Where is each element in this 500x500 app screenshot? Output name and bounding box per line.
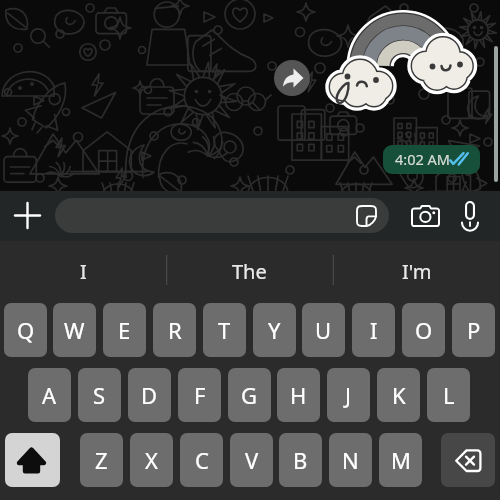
staticText: M: [391, 445, 411, 475]
button[interactable]: G: [228, 368, 271, 422]
staticText: D: [141, 380, 158, 410]
staticText: E: [118, 315, 131, 345]
staticText: U: [315, 315, 332, 345]
button[interactable]: T: [203, 303, 246, 357]
button[interactable]: V: [230, 433, 273, 487]
button[interactable]: M: [379, 433, 422, 487]
button[interactable]: E: [103, 303, 146, 357]
button[interactable]: X: [130, 433, 173, 487]
button[interactable]: Z: [80, 433, 123, 487]
button[interactable]: The: [166, 241, 333, 293]
staticText: The: [232, 258, 267, 285]
button[interactable]: H: [277, 368, 320, 422]
button[interactable]: Sticker: [55, 198, 389, 233]
button[interactable]: U: [302, 303, 345, 357]
staticText: I: [80, 258, 87, 285]
button[interactable]: Voice message: [450, 199, 492, 233]
other: Sticker: [356, 205, 376, 226]
button[interactable]: O: [402, 303, 445, 357]
staticText: H: [290, 380, 307, 410]
button[interactable]: B: [279, 433, 322, 487]
staticText: C: [195, 445, 209, 475]
button[interactable]: L: [427, 368, 470, 422]
button[interactable]: Forward: [274, 60, 310, 96]
staticText: I: [370, 315, 378, 345]
button[interactable]: Q: [4, 303, 47, 357]
staticText: 4:02 AM: [395, 149, 450, 169]
staticText: V: [245, 445, 259, 475]
staticText: P: [467, 315, 481, 345]
staticText: F: [194, 380, 206, 410]
staticText: T: [218, 315, 231, 345]
button[interactable]: F: [178, 368, 221, 422]
staticText: W: [64, 315, 85, 345]
button[interactable]: W: [53, 303, 96, 357]
button[interactable]: R: [153, 303, 196, 357]
staticText: J: [345, 380, 352, 410]
staticText: R: [168, 315, 182, 345]
button[interactable]: Shift: [5, 433, 60, 487]
button[interactable]: S: [78, 368, 121, 422]
staticText: K: [392, 380, 406, 410]
staticText: Y: [268, 315, 281, 345]
button[interactable]: Y: [253, 303, 296, 357]
button[interactable]: I'm: [333, 241, 500, 293]
button[interactable]: K: [377, 368, 420, 422]
staticText: B: [293, 445, 308, 475]
button[interactable]: D: [128, 368, 171, 422]
staticText: Z: [95, 445, 108, 475]
button[interactable]: 4:02 AM: [383, 145, 480, 174]
button[interactable]: N: [329, 433, 372, 487]
button[interactable]: A: [28, 368, 71, 422]
staticText: S: [93, 380, 106, 410]
staticText: I'm: [402, 258, 432, 285]
staticText: N: [342, 445, 359, 475]
button[interactable]: I: [352, 303, 395, 357]
button[interactable]: J: [327, 368, 370, 422]
staticText: L: [443, 380, 455, 410]
button[interactable]: Attach: [15, 203, 40, 228]
staticText: A: [42, 380, 57, 410]
staticText: Q: [17, 315, 35, 345]
button[interactable]: P: [452, 303, 495, 357]
staticText: O: [415, 315, 433, 345]
staticText: X: [145, 445, 158, 475]
button[interactable]: Camera: [402, 199, 448, 233]
button[interactable]: I: [0, 241, 166, 293]
staticText: G: [241, 380, 258, 410]
button[interactable]: C: [180, 433, 223, 487]
button[interactable]: Backspace: [441, 433, 495, 487]
